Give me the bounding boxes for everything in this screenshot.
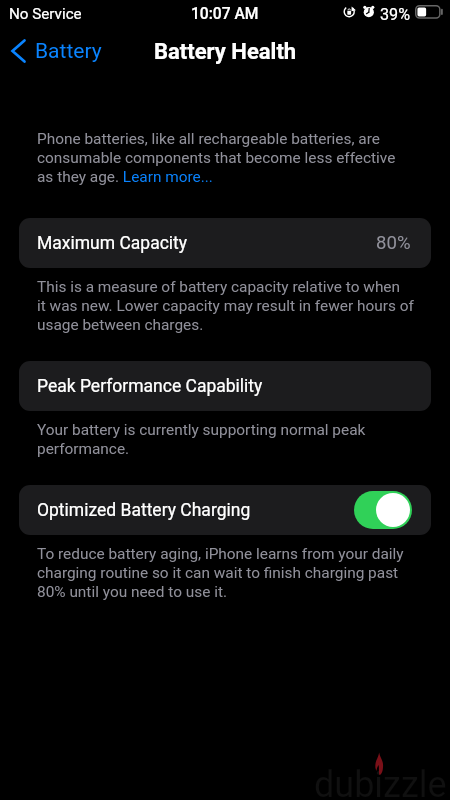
staticText: Phone batteries, like all rechargeable b… [37, 130, 396, 186]
staticText: Battery Health [154, 39, 297, 65]
staticText: Peak Performance Capability [37, 376, 263, 397]
button[interactable]: Peak Performance Capability [19, 361, 431, 411]
button[interactable]: Maximum Capacity [19, 218, 431, 268]
staticText: 80% [376, 232, 411, 254]
staticText: Your battery is currently supporting nor… [37, 421, 366, 458]
staticText: 10:07 AM [191, 5, 259, 23]
button[interactable]: Optimized Battery Charging toggle, on [354, 491, 412, 529]
staticText: dubizzle [314, 764, 447, 800]
staticText: Battery [35, 39, 102, 64]
staticText: Optimized Battery Charging [37, 500, 251, 521]
staticText: Maximum Capacity [37, 233, 188, 254]
staticText: This is a measure of battery capacity re… [37, 278, 414, 334]
button[interactable]: Back to Battery [6, 35, 110, 67]
staticText: To reduce battery aging, iPhone learns f… [37, 545, 404, 601]
staticText: 39% [380, 5, 411, 24]
button[interactable]: Optimized Battery Charging [19, 485, 431, 535]
staticText: No Service [9, 5, 82, 23]
